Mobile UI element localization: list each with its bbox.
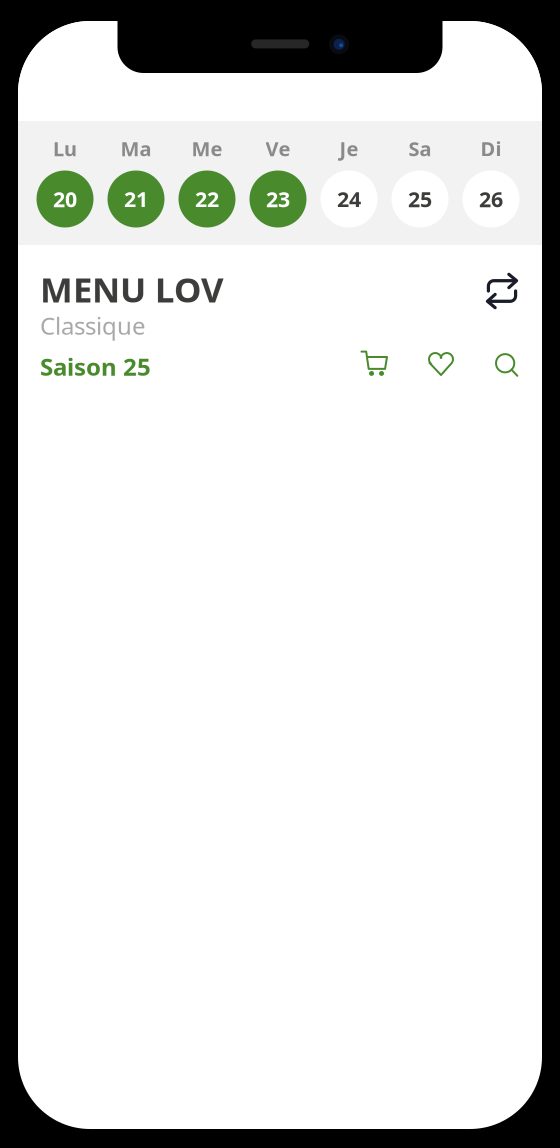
button[interactable]: Lu bbox=[29, 139, 100, 228]
staticText: MENU LOV bbox=[40, 266, 224, 312]
staticText: 23 bbox=[266, 185, 290, 213]
staticText: 20 bbox=[53, 185, 77, 213]
staticText: Je bbox=[339, 135, 358, 162]
button[interactable]: Je bbox=[313, 139, 384, 228]
staticText: Di bbox=[480, 135, 501, 162]
button[interactable]: Sa bbox=[384, 139, 455, 228]
button[interactable]: Me bbox=[171, 139, 242, 228]
staticText: Ve bbox=[265, 135, 290, 162]
staticText: Saison 25 bbox=[40, 351, 151, 382]
staticText: Ma bbox=[120, 135, 151, 162]
staticText: 21 bbox=[124, 185, 148, 213]
staticText: 26 bbox=[479, 185, 503, 213]
button[interactable]: Favourites bbox=[419, 344, 463, 384]
staticText: 24 bbox=[337, 185, 361, 213]
button[interactable]: Cart bbox=[352, 343, 396, 383]
staticText: 22 bbox=[195, 185, 219, 213]
button[interactable]: Repeat bbox=[479, 269, 525, 313]
button[interactable]: Ve bbox=[242, 139, 313, 228]
staticText: 25 bbox=[408, 185, 432, 213]
staticText: Lu bbox=[53, 135, 77, 162]
button[interactable]: Search bbox=[485, 345, 529, 385]
staticText: Classique bbox=[40, 310, 146, 341]
button[interactable]: Ma bbox=[100, 139, 171, 228]
staticText: Me bbox=[191, 135, 222, 162]
staticText: Sa bbox=[408, 135, 431, 162]
button[interactable]: Di bbox=[455, 139, 526, 228]
